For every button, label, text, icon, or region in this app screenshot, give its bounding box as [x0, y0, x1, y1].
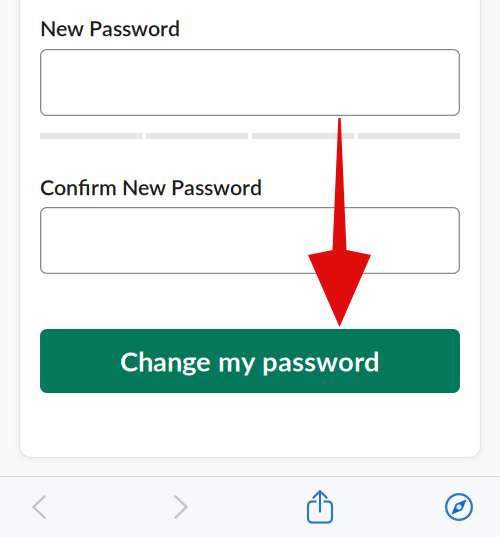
button[interactable]: Share [270, 477, 370, 537]
button[interactable]: Change my password [40, 329, 460, 393]
staticText: Change my password [120, 345, 380, 377]
staticText: Confirm New Password [40, 174, 262, 200]
button[interactable]: Forward [131, 477, 231, 537]
button[interactable]: Bookmarks [409, 477, 500, 537]
button[interactable]: Back [0, 477, 89, 537]
staticText: New Password [40, 15, 180, 41]
